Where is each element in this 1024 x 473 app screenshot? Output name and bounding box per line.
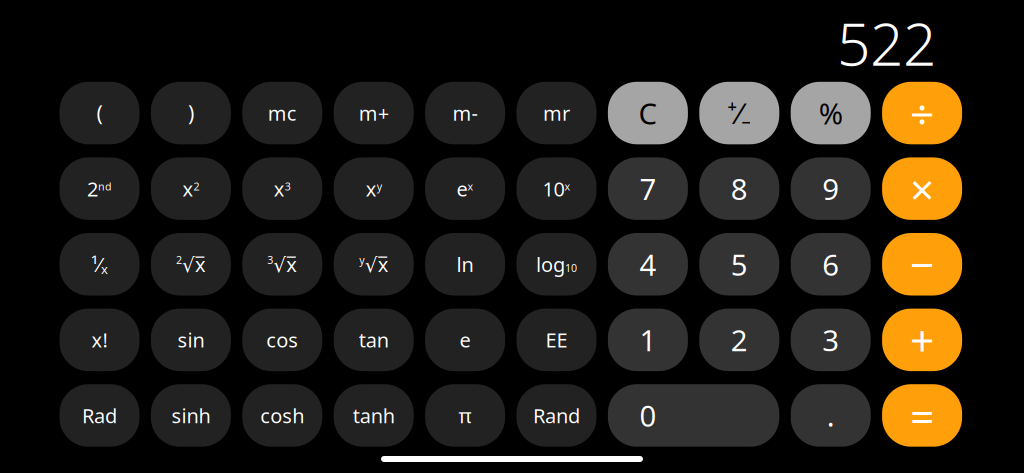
staticText: tanh: [353, 402, 395, 429]
staticText: =: [910, 387, 934, 444]
button[interactable]: tan: [334, 309, 414, 371]
button[interactable]: x squared: [151, 157, 231, 220]
button[interactable]: 1: [608, 309, 688, 371]
staticText: ¹⁄ₓ: [91, 251, 108, 278]
staticText: 1: [639, 320, 656, 359]
button[interactable]: log base 10: [516, 233, 596, 295]
button[interactable]: Minus: [882, 233, 962, 295]
button[interactable]: 6: [791, 233, 871, 295]
button[interactable]: Clear: [608, 82, 688, 144]
staticText: +: [910, 311, 934, 368]
button[interactable]: EE: [516, 309, 596, 371]
button[interactable]: y root of x: [334, 233, 414, 295]
staticText: %: [819, 94, 843, 133]
button[interactable]: sinh: [151, 384, 231, 447]
button[interactable]: 9: [791, 157, 871, 220]
button[interactable]: sin: [151, 309, 231, 371]
button[interactable]: x cubed: [242, 157, 322, 220]
button[interactable]: 4: [608, 233, 688, 295]
staticText: m+: [359, 100, 389, 126]
staticText: EE: [545, 327, 567, 353]
button[interactable]: 8: [699, 157, 779, 220]
staticText: sin: [177, 327, 204, 353]
staticText: x2: [182, 175, 199, 202]
button[interactable]: x factorial: [59, 309, 139, 371]
staticText: ln: [457, 251, 474, 278]
staticText: ex: [457, 175, 474, 202]
staticText: 2: [176, 253, 182, 267]
button[interactable]: m-: [425, 82, 505, 144]
staticText: (: [96, 99, 102, 127]
staticText: ÷: [910, 85, 934, 141]
staticText: 0: [639, 396, 656, 435]
button[interactable]: 0: [608, 384, 779, 447]
staticText: cosh: [260, 402, 304, 429]
staticText: ×: [910, 160, 934, 217]
button[interactable]: 3: [791, 309, 871, 371]
button[interactable]: 2: [699, 309, 779, 371]
button[interactable]: Divide: [882, 82, 962, 144]
button[interactable]: Percent: [791, 82, 871, 144]
staticText: √x: [365, 251, 389, 278]
staticText: 7: [639, 169, 656, 208]
button[interactable]: tanh: [334, 384, 414, 447]
button[interactable]: m+: [334, 82, 414, 144]
staticText: ): [188, 99, 194, 127]
button[interactable]: Equals: [882, 384, 962, 447]
button[interactable]: 7: [608, 157, 688, 220]
button[interactable]: 5: [699, 233, 779, 295]
staticText: π: [459, 402, 472, 429]
button[interactable]: e: [425, 309, 505, 371]
staticText: e: [460, 327, 471, 353]
button[interactable]: Rand: [516, 384, 596, 447]
button[interactable]: ): [151, 82, 231, 144]
staticText: log10: [536, 251, 577, 278]
staticText: .: [827, 396, 835, 435]
button[interactable]: Decimal point: [791, 384, 871, 447]
staticText: ⁺⁄₋: [727, 94, 751, 133]
button[interactable]: Pi: [425, 384, 505, 447]
button[interactable]: Multiply: [882, 157, 962, 220]
button[interactable]: Cube root of x: [242, 233, 322, 295]
button[interactable]: Plus: [882, 309, 962, 371]
staticText: 3: [267, 253, 273, 267]
staticText: Rand: [533, 402, 580, 429]
staticText: √x: [182, 251, 206, 278]
staticText: m-: [453, 100, 478, 126]
button[interactable]: (: [59, 82, 139, 144]
button[interactable]: Square root of x: [151, 233, 231, 295]
staticText: 10x: [542, 175, 570, 202]
staticText: mr: [543, 100, 570, 126]
button[interactable]: mc: [242, 82, 322, 144]
staticText: y: [359, 253, 364, 267]
staticText: 6: [822, 245, 839, 284]
button[interactable]: mr: [516, 82, 596, 144]
staticText: 2: [731, 320, 748, 359]
staticText: 522: [837, 4, 936, 82]
staticText: 4: [639, 245, 656, 284]
button[interactable]: One over x: [59, 233, 139, 295]
staticText: 3: [822, 320, 839, 359]
button[interactable]: Plus Minus: [699, 82, 779, 144]
button[interactable]: cosh: [242, 384, 322, 447]
button[interactable]: e to the power of x: [425, 157, 505, 220]
button[interactable]: Rad: [59, 384, 139, 447]
button[interactable]: 10 to the power of x: [516, 157, 596, 220]
staticText: 5: [731, 245, 748, 284]
staticText: mc: [268, 100, 297, 126]
staticText: 9: [822, 169, 839, 208]
staticText: C: [638, 94, 657, 133]
button[interactable]: ln: [425, 233, 505, 295]
staticText: −: [910, 236, 934, 293]
staticText: 2nd: [87, 175, 112, 202]
staticText: Rad: [82, 402, 117, 429]
staticText: x3: [274, 175, 291, 202]
staticText: 8: [731, 169, 748, 208]
button[interactable]: x to the power of y: [334, 157, 414, 220]
staticText: tan: [359, 327, 389, 353]
staticText: sinh: [171, 402, 210, 429]
staticText: √x: [273, 251, 297, 278]
staticText: xy: [366, 175, 382, 202]
button[interactable]: Second: [59, 157, 139, 220]
button[interactable]: cos: [242, 309, 322, 371]
